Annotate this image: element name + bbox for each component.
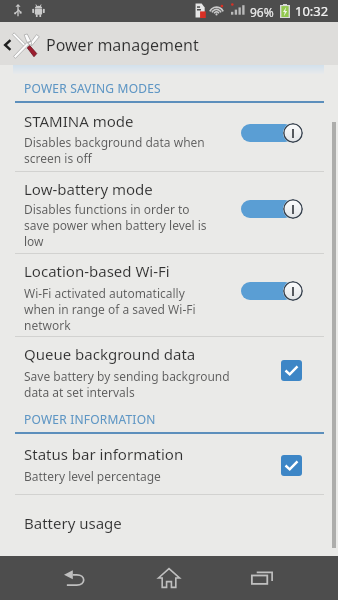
staticText: STAMINA mode bbox=[24, 111, 134, 131]
button[interactable]: Checkbox, checked bbox=[281, 360, 302, 381]
button[interactable]: Location-based Wi-Fi bbox=[0, 261, 338, 281]
staticText: 96% bbox=[250, 4, 274, 20]
staticText: Status bar information bbox=[24, 444, 184, 464]
staticText: Location-based Wi-Fi bbox=[24, 261, 170, 281]
button[interactable]: Back to Settings bbox=[0, 22, 338, 65]
staticText: 10:32 bbox=[295, 2, 329, 20]
staticText: Battery level percentage bbox=[24, 468, 161, 484]
button[interactable]: Home bbox=[139, 556, 199, 600]
button[interactable]: Toggle switch, on bbox=[241, 280, 303, 301]
button[interactable]: Toggle switch, on bbox=[241, 122, 303, 143]
button[interactable]: STAMINA mode bbox=[0, 111, 338, 131]
staticText: Disables background data when screen is … bbox=[24, 134, 205, 166]
staticText: POWER INFORMATION bbox=[24, 411, 156, 427]
staticText: Wi-Fi activated automatically when in ra… bbox=[24, 285, 196, 333]
button[interactable]: Battery usage bbox=[0, 513, 338, 533]
staticText: Save battery by sending background data … bbox=[24, 368, 230, 400]
button[interactable]: Checkbox, checked bbox=[281, 455, 302, 476]
button[interactable]: Status bar information bbox=[0, 444, 338, 464]
staticText: Battery usage bbox=[24, 513, 122, 533]
staticText: Queue background data bbox=[24, 344, 196, 364]
staticText: Low-battery mode bbox=[24, 179, 153, 199]
staticText: Disables functions in order to save powe… bbox=[24, 201, 207, 249]
staticText: POWER SAVING MODES bbox=[24, 80, 161, 96]
button[interactable]: Low-battery mode bbox=[0, 179, 338, 199]
button[interactable]: Toggle switch, on bbox=[241, 198, 303, 219]
staticText: Power management bbox=[46, 34, 199, 56]
button[interactable]: Queue background data bbox=[0, 344, 338, 364]
button[interactable]: Back bbox=[45, 556, 105, 600]
button[interactable]: Recent apps bbox=[232, 556, 292, 600]
